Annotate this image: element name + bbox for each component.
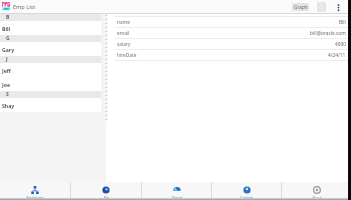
staticText: Jeff (2, 67, 11, 74)
staticText: 4000 (335, 41, 346, 48)
staticText: salary (117, 41, 131, 48)
staticText: G (6, 35, 10, 42)
staticText: name (117, 19, 130, 26)
staticText: Shay (2, 102, 15, 109)
staticText: 4/24/11 (328, 52, 346, 59)
button[interactable]: Pie (71, 182, 141, 198)
staticText: Gary (2, 46, 15, 53)
staticText: Bill (2, 25, 11, 32)
staticText: J (6, 56, 8, 63)
staticText: B (6, 14, 10, 21)
button[interactable]: Donut (142, 182, 211, 198)
button[interactable]: More options (333, 2, 343, 12)
staticText: Joe (2, 81, 11, 88)
staticText: Emp List (13, 3, 36, 11)
staticText: Pie (104, 195, 109, 198)
staticText: Employees (26, 195, 44, 198)
staticText: hireDate (117, 52, 137, 59)
button[interactable]: About (282, 182, 351, 198)
staticText: Bill (339, 19, 346, 26)
button[interactable]: Employees (0, 182, 70, 198)
staticText: email (117, 30, 130, 37)
button[interactable]: Jeff (0, 63, 101, 77)
button[interactable]: Joe (0, 77, 101, 91)
button[interactable]: Shay (0, 98, 101, 112)
staticText: S (6, 91, 9, 98)
button[interactable]: Graph (292, 3, 309, 11)
staticText: bill@oracle.com (310, 30, 346, 37)
button[interactable]: Bill (0, 21, 101, 35)
button[interactable]: Gary (0, 42, 101, 56)
button[interactable]: Contact (212, 182, 281, 198)
staticText: Donut (172, 195, 182, 198)
button[interactable]: List view (317, 2, 326, 11)
staticText: Contact (240, 195, 253, 198)
staticText: About (312, 195, 322, 198)
staticText: Graph (294, 4, 308, 10)
